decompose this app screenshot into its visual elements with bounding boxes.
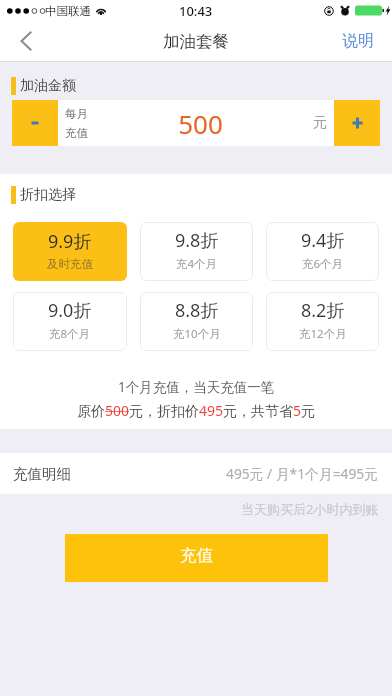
staticText: 加油金额 <box>20 77 76 95</box>
button[interactable]: Back <box>0 21 50 61</box>
button[interactable]: 8.2折 <box>266 292 379 351</box>
staticText: 9.4折 <box>301 228 345 253</box>
button[interactable]: 充值 <box>65 534 328 582</box>
button[interactable]: 9.9折 <box>13 222 127 281</box>
button[interactable]: 充值明细 <box>0 453 392 494</box>
button[interactable]: Increase amount <box>334 100 380 146</box>
staticText: 充10个月 <box>173 326 221 342</box>
staticText: 中国联通 <box>45 4 91 18</box>
button[interactable]: 8.8折 <box>140 292 253 351</box>
button[interactable]: 9.8折 <box>140 222 253 281</box>
staticText: 原价500元，折扣价495元，共节省5元 <box>77 401 316 420</box>
staticText: 充值明细 <box>13 465 71 483</box>
staticText: 每月 <box>65 107 88 121</box>
staticText: 及时充值 <box>47 257 93 271</box>
button[interactable]: 9.0折 <box>13 292 127 351</box>
staticText: 9.8折 <box>175 228 219 253</box>
staticText: 9.9折 <box>48 229 92 254</box>
button[interactable]: 说明 <box>328 21 392 61</box>
staticText: 当天购买后2小时内到账 <box>241 500 379 518</box>
staticText: 元 <box>313 114 327 132</box>
staticText: 折扣选择 <box>20 186 76 204</box>
staticText: 9.0折 <box>48 298 92 323</box>
button[interactable]: 9.4折 <box>266 222 379 281</box>
staticText: 充值 <box>180 545 213 566</box>
staticText: 充4个月 <box>176 256 218 272</box>
staticText: 充值 <box>65 126 88 140</box>
staticText: 加油套餐 <box>163 31 229 52</box>
staticText: 充12个月 <box>299 326 347 342</box>
staticText: 8.2折 <box>301 298 345 323</box>
staticText: 充8个月 <box>49 326 91 342</box>
staticText: 495元 / 月*1个月=495元 <box>226 464 379 483</box>
button[interactable]: Decrease amount <box>12 100 58 146</box>
staticText: 说明 <box>342 31 374 51</box>
staticText: 500 <box>88 106 313 141</box>
staticText: 1个月充值，当天充值一笔 <box>118 378 275 396</box>
staticText: 充6个月 <box>302 256 344 272</box>
staticText: 10:43 <box>179 2 213 20</box>
staticText: 8.8折 <box>175 298 219 323</box>
